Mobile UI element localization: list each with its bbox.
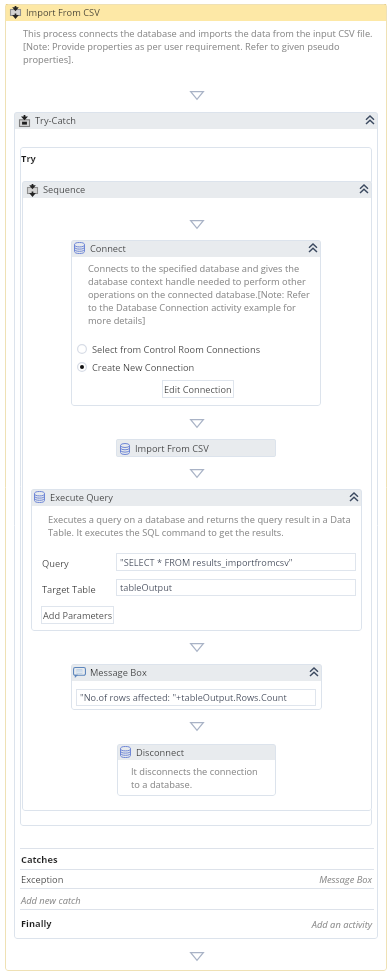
staticText: Try xyxy=(21,152,36,165)
staticText: Query xyxy=(42,557,69,570)
button[interactable]: Import From CSV xyxy=(116,439,276,457)
staticText: Add Parameters xyxy=(43,609,113,622)
staticText: Import From CSV xyxy=(26,6,100,19)
staticText: This process connects the database and i… xyxy=(23,27,383,66)
button[interactable]: Disconnect xyxy=(117,744,276,760)
staticText: Edit Connection xyxy=(164,383,232,396)
staticText: "No.of rows affected: "+tableOutput.Rows… xyxy=(80,691,287,704)
button[interactable]: Connect xyxy=(71,240,321,257)
staticText: Finally xyxy=(21,917,52,930)
staticText: "SELECT * FROM results_importfromcsv" xyxy=(120,556,293,569)
button[interactable]: Message Box xyxy=(71,664,322,681)
button[interactable]: Select from Control Room Connections xyxy=(77,342,261,356)
button[interactable]: "No.of rows affected: "+tableOutput.Rows… xyxy=(76,689,316,706)
staticText: Target Table xyxy=(42,583,96,596)
staticText: Exception xyxy=(21,873,64,886)
staticText: Message Box xyxy=(90,666,147,679)
staticText: Execute Query xyxy=(50,491,113,504)
staticText: Disconnect xyxy=(136,746,184,759)
button[interactable]: "SELECT * FROM results_importfromcsv" xyxy=(116,553,356,571)
staticText: Select from Control Room Connections xyxy=(92,343,261,356)
staticText: Catches xyxy=(21,853,58,866)
staticText: It disconnects the connection to a datab… xyxy=(131,765,281,791)
button[interactable]: Add Parameters xyxy=(41,606,114,624)
staticText: Create New Connection xyxy=(92,361,195,374)
button[interactable]: Sequence xyxy=(22,181,372,198)
staticText: tableOutput xyxy=(120,581,173,594)
other: Collapse xyxy=(350,493,358,501)
staticText: Message Box xyxy=(250,873,372,886)
button[interactable]: Create New Connection xyxy=(77,360,195,374)
other: Collapse xyxy=(309,244,317,252)
staticText: Import From CSV xyxy=(135,442,209,455)
button[interactable]: Try-Catch xyxy=(14,112,378,129)
other: Collapse xyxy=(310,668,318,676)
other: Collapse xyxy=(360,185,368,193)
staticText: Connect xyxy=(90,242,126,255)
button[interactable]: tableOutput xyxy=(116,579,356,596)
button[interactable]: Import From CSV xyxy=(5,4,387,21)
staticText: Add new catch xyxy=(21,894,81,907)
staticText: Sequence xyxy=(43,183,86,196)
button[interactable]: Execute Query xyxy=(31,489,362,506)
other: Collapse xyxy=(366,116,374,124)
staticText: Connects to the specified database and g… xyxy=(88,262,320,327)
staticText: Try-Catch xyxy=(35,114,77,127)
staticText: Add an activity xyxy=(250,918,372,931)
staticText: Executes a query on a database and retur… xyxy=(48,513,360,539)
button[interactable]: Edit Connection xyxy=(162,380,234,398)
